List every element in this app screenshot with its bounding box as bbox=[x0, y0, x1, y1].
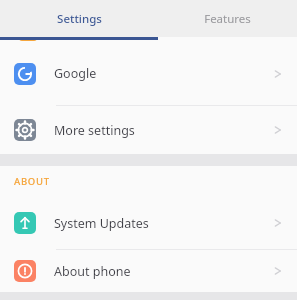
other: About phone bbox=[14, 260, 36, 282]
other: System Updates bbox=[14, 212, 36, 234]
staticText: Settings bbox=[57, 11, 102, 27]
staticText: Features bbox=[204, 11, 251, 27]
button[interactable]: About phone bbox=[0, 250, 297, 292]
staticText: More settings bbox=[54, 122, 135, 139]
staticText: About phone bbox=[54, 263, 131, 280]
button[interactable]: Settings bbox=[0, 0, 158, 37]
button[interactable]: Features bbox=[158, 0, 297, 37]
other: Google bbox=[14, 63, 36, 85]
staticText: Google bbox=[54, 65, 97, 82]
staticText: ABOUT bbox=[14, 175, 50, 188]
button[interactable]: Google bbox=[0, 42, 297, 105]
other: More settings bbox=[14, 119, 36, 141]
staticText: System Updates bbox=[54, 215, 149, 232]
button[interactable]: System Updates bbox=[0, 197, 297, 249]
button[interactable]: More settings bbox=[0, 106, 297, 154]
